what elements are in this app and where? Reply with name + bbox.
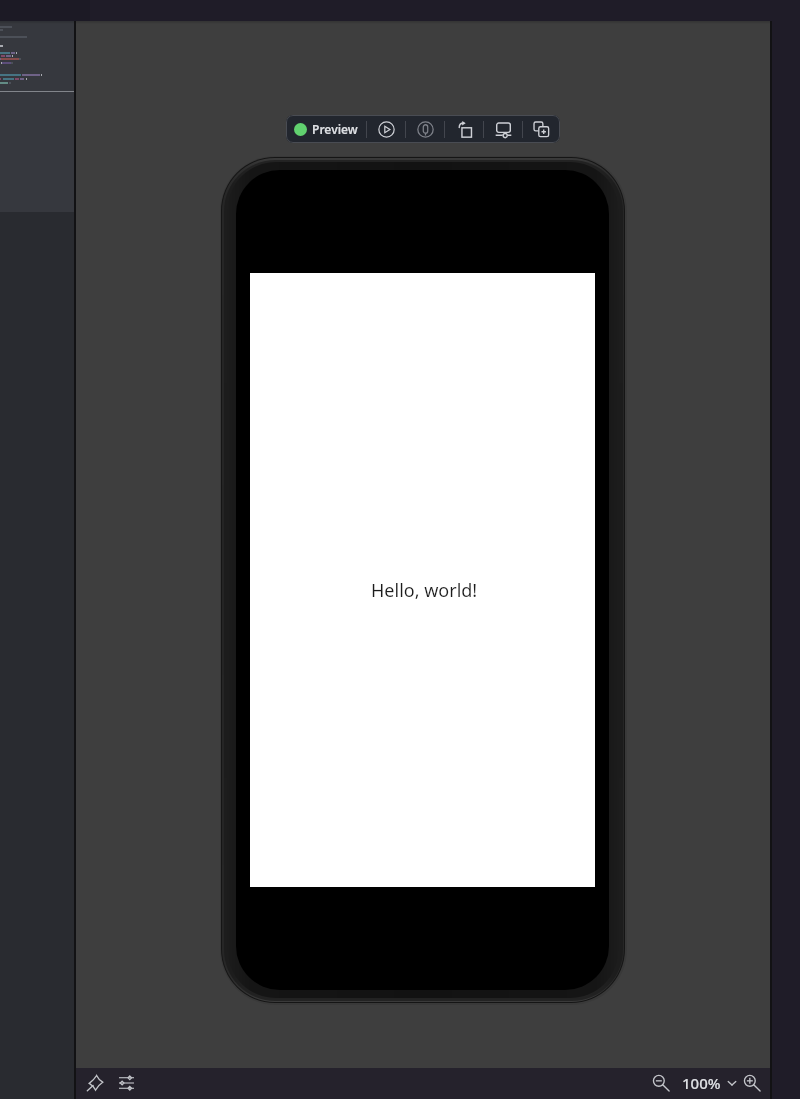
button[interactable]: Zoom in	[739, 1070, 764, 1095]
button[interactable]: Deploy to device	[484, 115, 522, 143]
button[interactable]: Run preview	[367, 115, 405, 143]
button[interactable]: 100%	[681, 1070, 738, 1095]
staticText: Hello, world!	[371, 578, 478, 603]
button[interactable]: Preview	[286, 115, 366, 143]
button[interactable]: Rerun preview	[445, 115, 483, 143]
button[interactable]: Copy preview	[523, 115, 560, 143]
button[interactable]: Preview settings	[114, 1071, 138, 1095]
button[interactable]: Zoom out	[648, 1070, 673, 1095]
staticText: 100%	[682, 1073, 721, 1093]
button[interactable]: Interactive preview	[406, 115, 444, 143]
staticText: Preview	[312, 121, 358, 137]
button[interactable]: Pin preview	[83, 1071, 107, 1095]
